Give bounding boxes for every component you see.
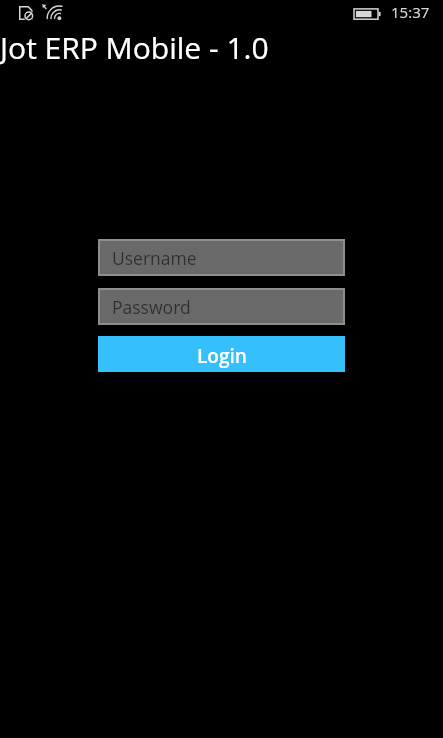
button[interactable]: Password bbox=[98, 288, 345, 325]
other: Data transfer bbox=[42, 4, 48, 10]
staticText: Jot ERP Mobile - 1.0 bbox=[0, 27, 269, 68]
staticText: Login bbox=[197, 343, 247, 369]
staticText: Password bbox=[112, 295, 191, 319]
button[interactable]: Username bbox=[98, 239, 345, 276]
staticText: 15:37 bbox=[391, 2, 430, 22]
button[interactable]: Login bbox=[98, 336, 345, 372]
staticText: Username bbox=[112, 246, 197, 270]
other: Wi-Fi connected bbox=[46, 4, 62, 20]
other: Battery bbox=[353, 8, 381, 20]
other: No SIM card bbox=[19, 6, 33, 20]
